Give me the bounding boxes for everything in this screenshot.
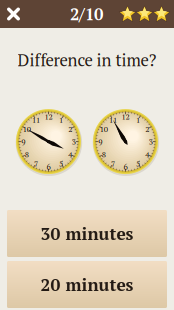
staticText: 6	[123, 161, 127, 172]
button[interactable]: 20 minutes	[7, 261, 167, 308]
button[interactable]: Close	[0, 0, 27, 28]
staticText: 11	[109, 114, 117, 125]
staticText: 3	[149, 136, 153, 147]
button[interactable]: 30 minutes	[7, 210, 167, 257]
staticText: 4	[68, 149, 72, 159]
staticText: 12	[121, 111, 129, 122]
staticText: 10	[100, 124, 108, 134]
staticText: 9	[98, 136, 102, 147]
staticText: 5	[59, 158, 63, 169]
staticText: 6	[46, 161, 50, 172]
staticText: 12	[44, 111, 52, 122]
staticText: 2/10	[70, 3, 103, 25]
staticText: 5	[136, 158, 140, 169]
staticText: 2	[68, 124, 72, 134]
staticText: 30 minutes	[40, 222, 133, 245]
staticText: 3	[72, 136, 76, 147]
staticText: 20 minutes	[40, 273, 133, 296]
staticText: 10	[23, 124, 31, 134]
staticText: Difference in time?	[17, 49, 156, 71]
staticText: 1	[136, 114, 140, 125]
staticText: 8	[25, 149, 29, 159]
staticText: 8	[102, 149, 106, 159]
staticText: 7	[34, 158, 38, 169]
staticText: 9	[21, 136, 25, 147]
staticText: 11	[32, 114, 40, 125]
staticText: 7	[111, 158, 115, 169]
staticText: 2	[145, 124, 149, 134]
staticText: 1	[59, 114, 63, 125]
staticText: 4	[145, 149, 149, 159]
